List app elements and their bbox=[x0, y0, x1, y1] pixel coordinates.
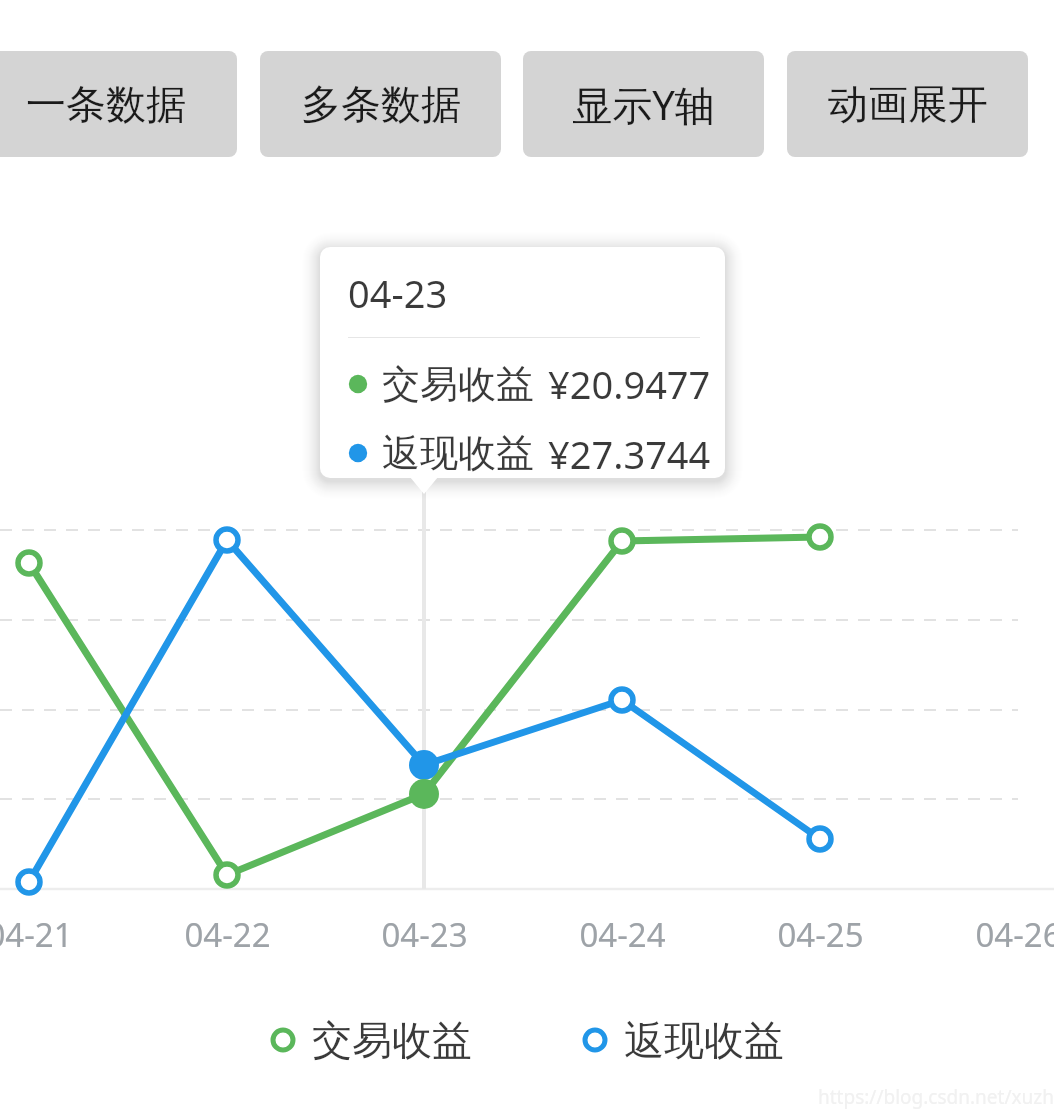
button[interactable]: 动画展开 bbox=[787, 51, 1028, 157]
staticText: 04-22 bbox=[184, 912, 271, 957]
staticText: 一条数据 bbox=[26, 79, 186, 129]
staticText: 返现收益 bbox=[624, 1015, 784, 1065]
staticText: 返现收益 bbox=[382, 429, 534, 477]
button[interactable]: 多条数据 bbox=[260, 51, 501, 157]
staticText: 交易收益 bbox=[312, 1015, 472, 1065]
button[interactable]: 04-23 bbox=[320, 247, 725, 478]
button[interactable]: 显示Y轴 bbox=[523, 51, 764, 157]
staticText: 04-25 bbox=[777, 912, 864, 957]
staticText: 多条数据 bbox=[301, 79, 461, 129]
button[interactable]: 返现收益 bbox=[582, 1015, 784, 1065]
button[interactable]: 交易收益 bbox=[270, 1015, 472, 1065]
staticText: 04-21 bbox=[0, 912, 73, 957]
staticText: ¥27.374464 bbox=[548, 428, 725, 478]
staticText: https://blog.csdn.net/xuzhb_blog bbox=[818, 1084, 1054, 1110]
staticText: 显示Y轴 bbox=[572, 77, 715, 132]
staticText: 04-23 bbox=[348, 267, 448, 319]
staticText: 04-26 bbox=[975, 912, 1054, 957]
staticText: 交易收益 bbox=[382, 360, 534, 408]
staticText: 04-23 bbox=[381, 912, 468, 957]
staticText: 04-24 bbox=[579, 912, 666, 957]
staticText: ¥20.9477 bbox=[548, 358, 711, 410]
staticText: 动画展开 bbox=[828, 79, 988, 129]
button[interactable]: 一条数据 bbox=[0, 51, 237, 157]
